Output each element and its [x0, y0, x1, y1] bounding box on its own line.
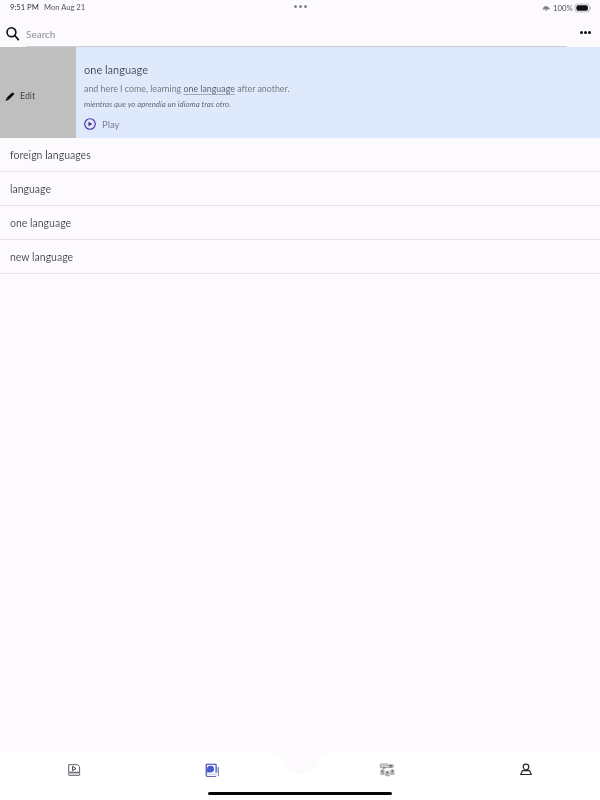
button[interactable] — [4, 18, 568, 47]
staticText: mientras que yo aprendía un idioma tras … — [84, 99, 231, 108]
other: Search — [6, 27, 19, 40]
button[interactable]: Media — [42, 752, 106, 792]
staticText: one language — [84, 63, 148, 76]
button[interactable]: More options — [576, 24, 594, 40]
button[interactable]: Play — [84, 118, 120, 130]
button[interactable]: foreign languages — [0, 138, 600, 172]
button[interactable]: Edit — [0, 47, 76, 138]
button[interactable]: language — [0, 172, 600, 206]
staticText: 100% — [553, 3, 573, 12]
button[interactable]: Dictionary — [180, 752, 244, 792]
staticText: 9:51 PM — [10, 2, 39, 11]
button[interactable]: one language — [76, 47, 600, 138]
staticText: Mon Aug 21 — [44, 2, 86, 11]
staticText: one language — [10, 217, 72, 230]
staticText: new language — [10, 251, 74, 264]
staticText: language — [10, 183, 52, 196]
staticText: and here I come, learning one language a… — [84, 83, 290, 94]
staticText: Search — [26, 28, 56, 40]
staticText: Edit — [20, 90, 36, 101]
button[interactable]: Conversation — [355, 752, 419, 792]
button[interactable]: Profile — [494, 752, 558, 792]
staticText: Play — [102, 119, 120, 130]
staticText: foreign languages — [10, 149, 91, 162]
button[interactable]: new language — [0, 240, 600, 274]
button[interactable]: one language — [0, 206, 600, 240]
